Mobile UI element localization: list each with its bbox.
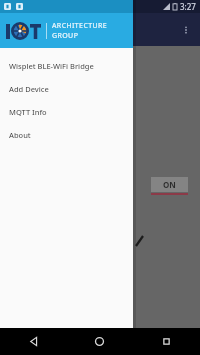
staticText: 3:27 — [180, 1, 196, 12]
button[interactable]: Back — [0, 328, 66, 355]
button[interactable]: More options — [175, 19, 197, 41]
staticText: Add Device — [9, 84, 49, 94]
button[interactable]: MQTT Info — [0, 100, 133, 123]
button[interactable]: Recents — [133, 328, 200, 355]
button[interactable]: Wisplet BLE-WiFi Bridge — [0, 54, 133, 77]
staticText: MQTT Info — [9, 107, 47, 117]
button[interactable]: Home — [66, 328, 133, 355]
staticText: Wisplet BLE-WiFi Bridge — [9, 61, 94, 71]
staticText: About — [9, 130, 31, 140]
staticText: GROUP — [52, 31, 79, 41]
staticText: ON — [163, 179, 176, 190]
button[interactable]: ON — [151, 177, 188, 195]
button[interactable]: Add Device — [0, 77, 133, 100]
staticText: ARCHITECTURE — [52, 21, 108, 31]
button[interactable]: About — [0, 123, 133, 146]
